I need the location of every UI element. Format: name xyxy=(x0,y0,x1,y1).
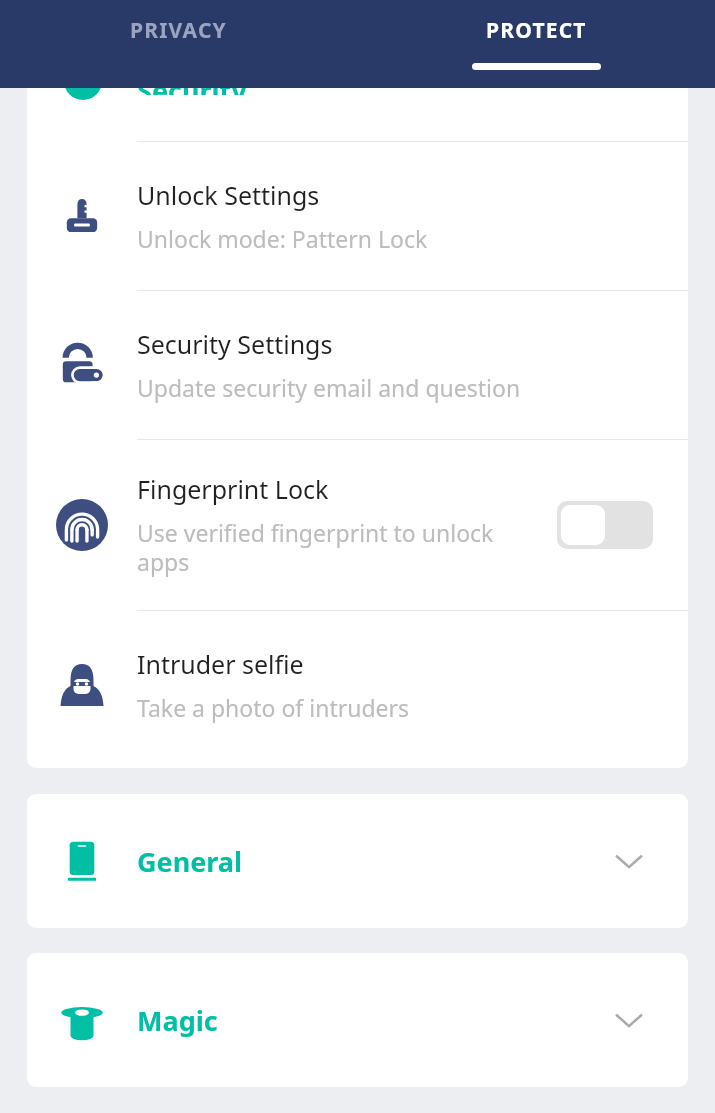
staticText: Take a photo of intruders xyxy=(137,692,410,723)
other: Expand xyxy=(612,1003,646,1037)
staticText: Magic xyxy=(137,1002,612,1039)
button[interactable]: General xyxy=(27,794,688,928)
staticText: Security Settings xyxy=(137,327,333,361)
button[interactable]: Unlock Settings xyxy=(27,142,688,290)
staticText: Unlock Settings xyxy=(137,178,320,212)
button[interactable]: Security Settings xyxy=(27,291,688,439)
button[interactable]: Fingerprint Lock xyxy=(27,440,688,610)
staticText: Fingerprint Lock xyxy=(137,472,329,506)
button[interactable]: PRIVACY xyxy=(0,0,357,88)
staticText: PROTECT xyxy=(486,16,587,45)
other: Expand xyxy=(612,844,646,878)
staticText: Use verified fingerprint to unlock apps xyxy=(137,517,545,578)
staticText: General xyxy=(137,843,612,880)
staticText: Update security email and question xyxy=(137,372,521,403)
button[interactable]: PROTECT xyxy=(357,0,715,88)
button[interactable]: Magic xyxy=(27,953,688,1087)
button[interactable]: Fingerprint Lock toggle xyxy=(557,501,653,549)
button[interactable]: Intruder selfie xyxy=(27,611,688,759)
staticText: Unlock mode: Pattern Lock xyxy=(137,223,428,254)
staticText: Security xyxy=(137,88,247,95)
button[interactable]: Security xyxy=(27,88,688,111)
staticText: Intruder selfie xyxy=(137,647,304,681)
staticText: PRIVACY xyxy=(130,16,227,45)
